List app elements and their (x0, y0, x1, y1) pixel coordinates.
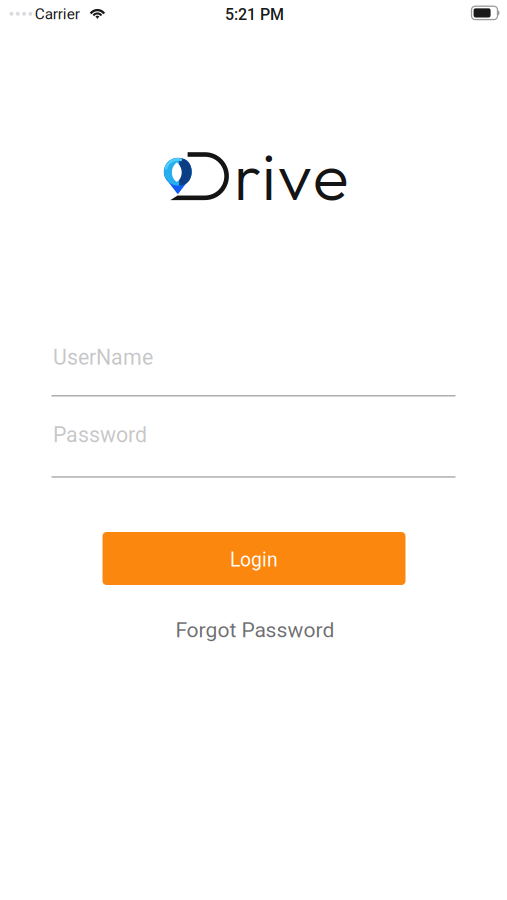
staticText: Password (53, 422, 147, 447)
staticText: UserName (53, 345, 153, 370)
staticText: 5:21 PM (225, 5, 284, 24)
staticText: Login (230, 549, 278, 571)
staticText: Forgot Password (175, 618, 334, 642)
button[interactable]: Login (102, 532, 405, 585)
staticText: Carrier (35, 5, 80, 23)
staticText: rive (234, 133, 349, 217)
button[interactable]: Forgot Password (145, 613, 365, 647)
